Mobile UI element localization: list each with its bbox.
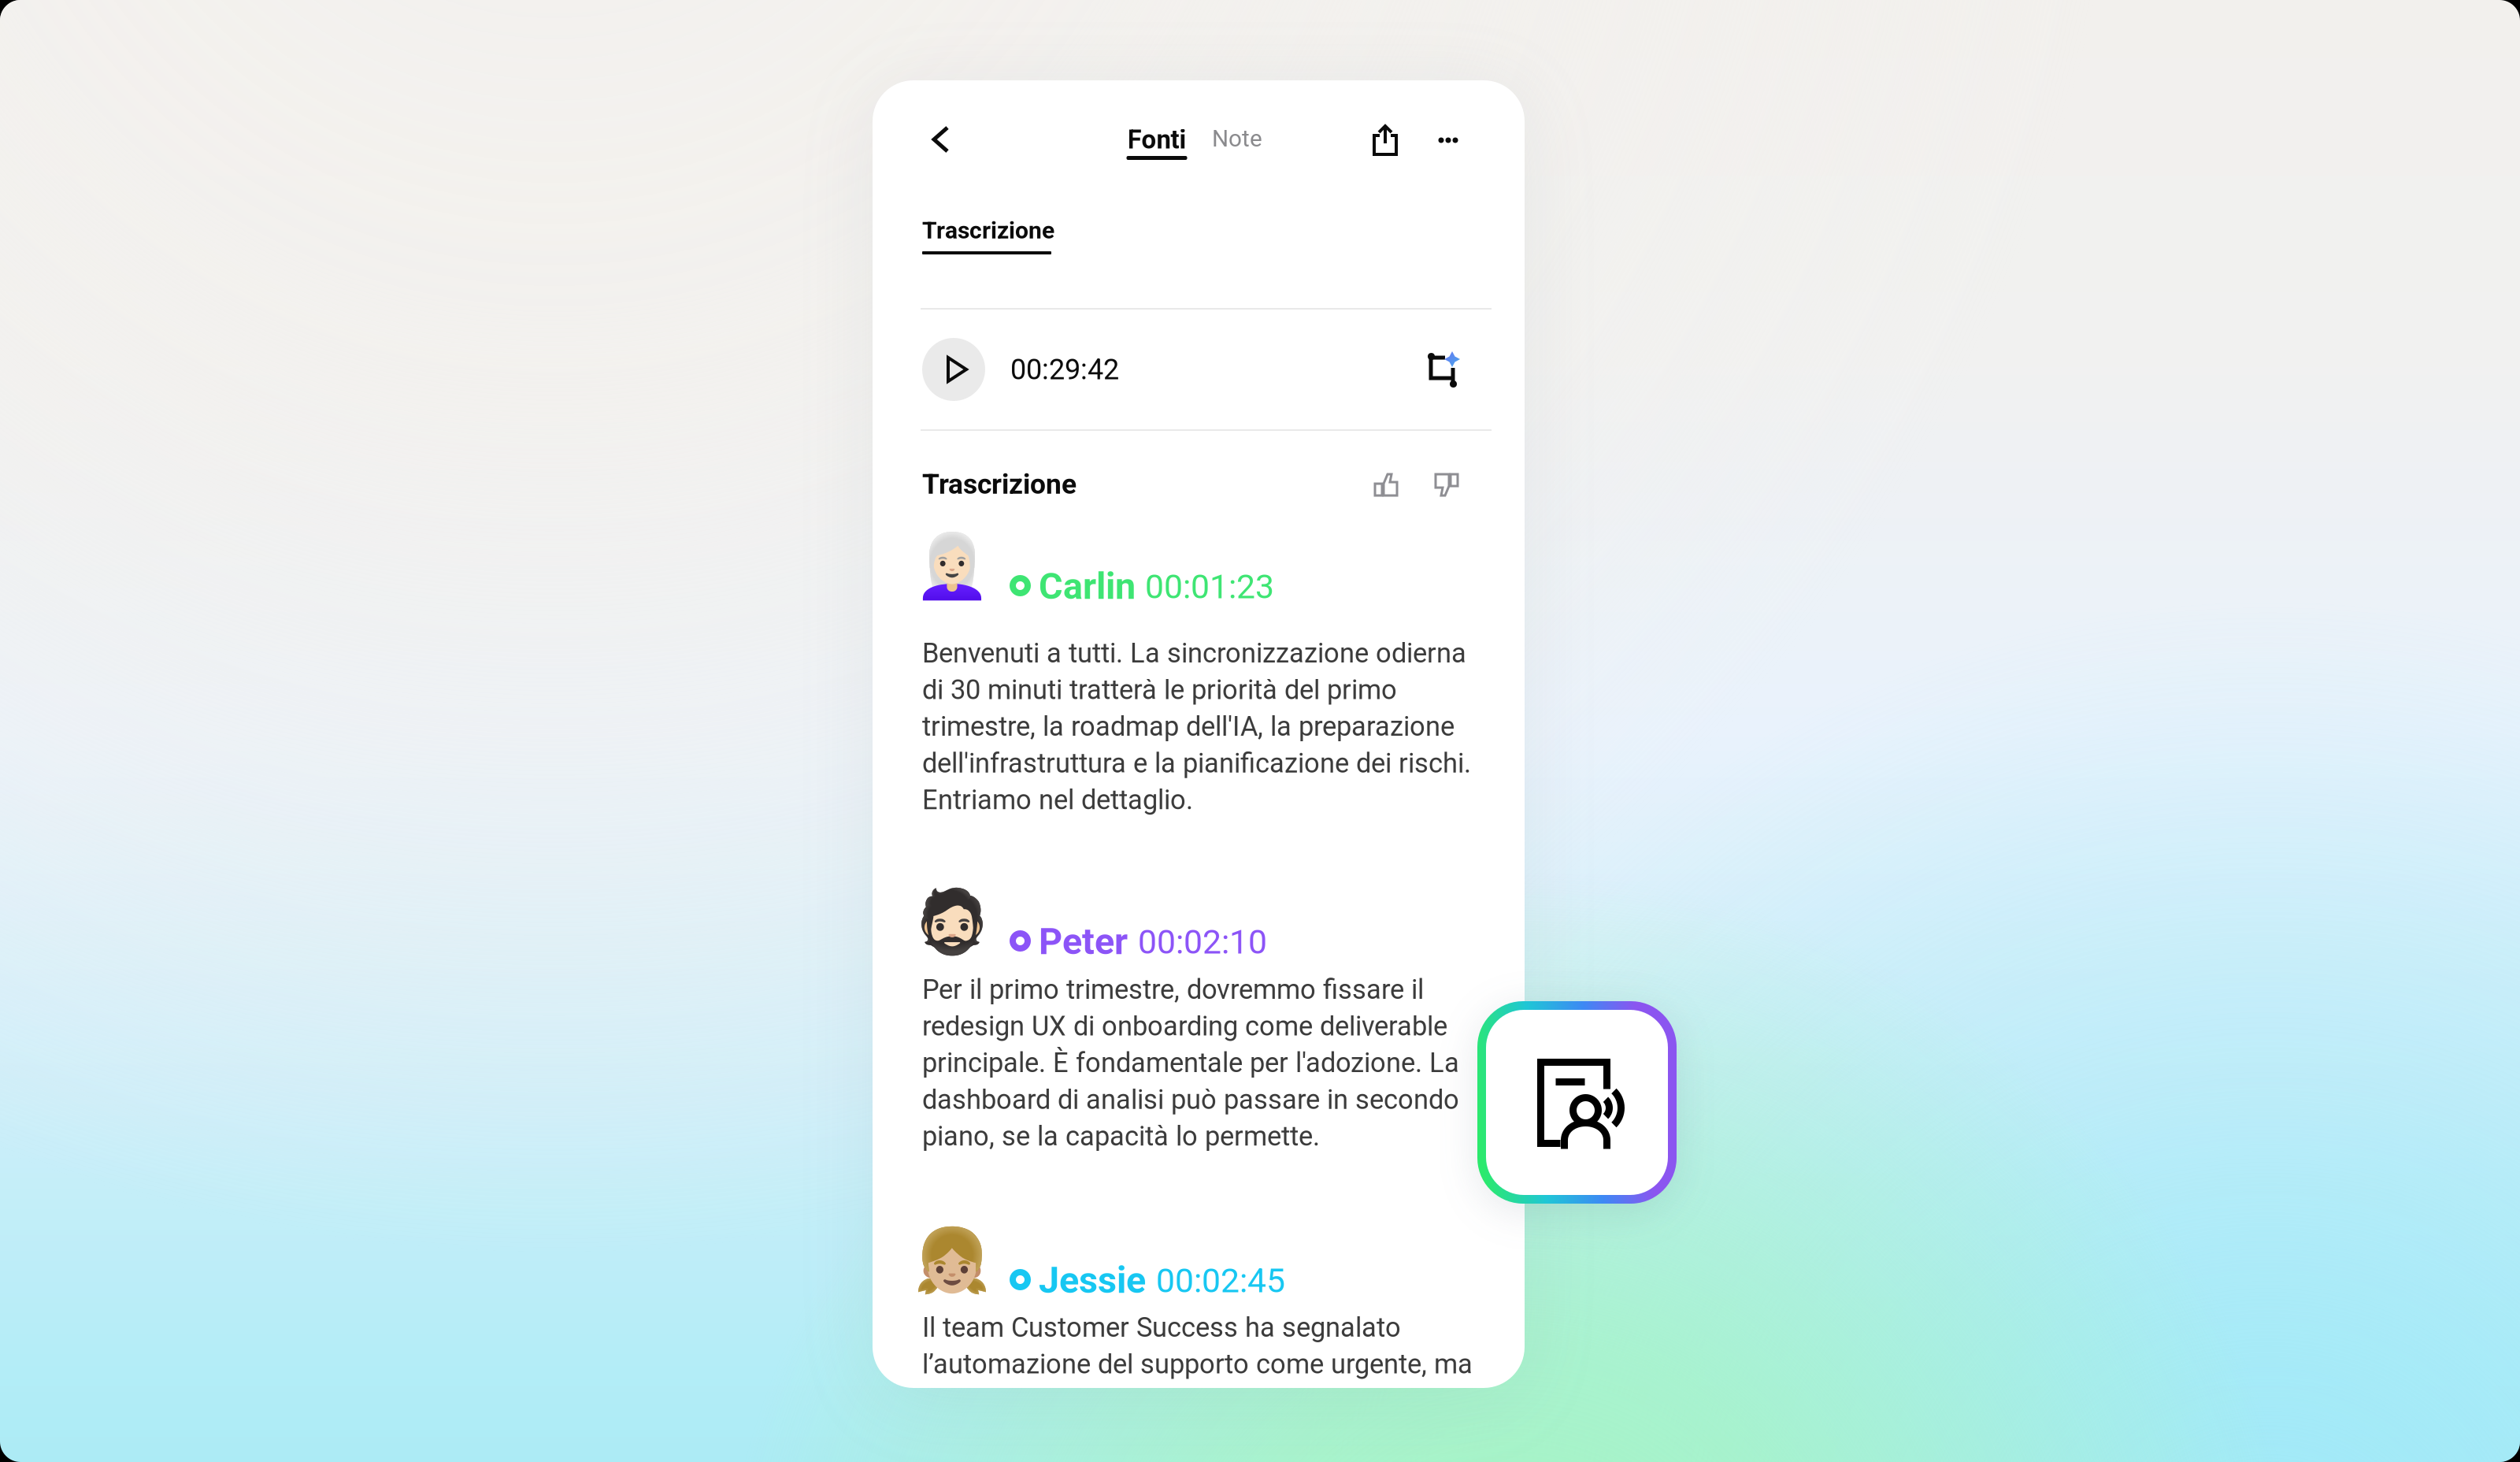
staticText: piano, se la capacità lo permette.: [922, 1120, 1320, 1152]
button[interactable]: Create clip: [1426, 351, 1461, 388]
staticText: Il team Customer Success ha segnalato: [922, 1312, 1401, 1343]
staticText: Note: [1212, 125, 1262, 152]
staticText: dell'infrastruttura e la pianificazione …: [922, 747, 1471, 779]
button[interactable]: Back: [931, 125, 951, 154]
staticText: dashboard di analisi può passare in seco…: [922, 1084, 1459, 1115]
staticText: redesign UX di onboarding come deliverab…: [922, 1010, 1447, 1042]
button[interactable]: Not helpful: [1434, 473, 1459, 497]
staticText: Peter: [1039, 920, 1128, 963]
staticText: Per il primo trimestre, dovremmo fissare…: [922, 974, 1424, 1005]
staticText: 00:02:10: [1138, 922, 1267, 962]
staticText: 00:02:45: [1156, 1261, 1285, 1301]
staticText: 🧔🏻: [913, 885, 991, 958]
staticText: trimestre, la roadmap dell'IA, la prepar…: [922, 711, 1455, 742]
button[interactable]: Trascrizione: [922, 217, 1064, 254]
button[interactable]: Fonti: [1121, 124, 1192, 160]
staticText: Jessie: [1039, 1259, 1146, 1302]
button[interactable]: More options: [1438, 124, 1458, 156]
staticText: Carlin: [1039, 565, 1136, 608]
button[interactable]: Helpful: [1373, 473, 1399, 497]
staticText: Entriamo nel dettaglio.: [922, 784, 1193, 816]
staticText: 00:01:23: [1145, 567, 1274, 607]
staticText: l’automazione del supporto come urgente,…: [922, 1348, 1473, 1380]
staticText: di 30 minuti tratterà le priorità del pr…: [922, 674, 1397, 706]
staticText: 👧🏼: [913, 1224, 991, 1297]
button[interactable]: Share: [1373, 124, 1398, 156]
staticText: Trascrizione: [922, 217, 1054, 244]
staticText: Benvenuti a tutti. La sincronizzazione o…: [922, 637, 1466, 669]
button[interactable]: Play: [922, 338, 985, 401]
staticText: 👩🏻‍🦳: [913, 530, 991, 603]
button[interactable]: Note: [1212, 124, 1275, 153]
staticText: Fonti: [1127, 124, 1186, 155]
staticText: Trascrizione: [922, 468, 1077, 501]
button[interactable]: Transcribe: [1477, 1001, 1677, 1204]
staticText: principale. È fondamentale per l'adozion…: [922, 1047, 1459, 1079]
staticText: 00:29:42: [1010, 353, 1119, 386]
